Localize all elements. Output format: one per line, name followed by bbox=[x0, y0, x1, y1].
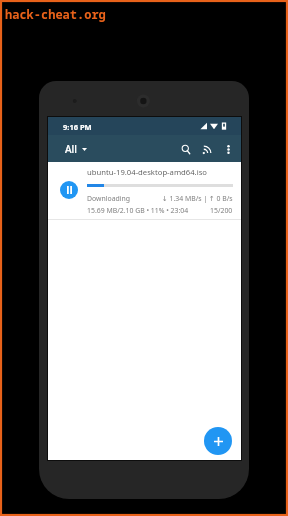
button[interactable]: RSS feed bbox=[195, 137, 219, 161]
staticText: All bbox=[65, 142, 77, 156]
staticText: Downloading bbox=[87, 194, 131, 203]
staticText: ubuntu-19.04-desktop-amd64.iso bbox=[87, 167, 207, 177]
staticText: 15/200 bbox=[210, 206, 233, 215]
button[interactable]: Pause bbox=[60, 181, 78, 199]
button[interactable]: All bbox=[60, 138, 92, 160]
staticText: 15.69 MB/2.10 GB • 11% • 23:04 bbox=[87, 206, 189, 215]
button[interactable]: Search bbox=[174, 137, 198, 161]
staticText: ↓ 1.34 MB/s | ↑ 0 B/s bbox=[162, 194, 233, 203]
button[interactable]: More options bbox=[216, 137, 240, 161]
button[interactable]: Add download bbox=[204, 427, 232, 455]
staticText: hack-cheat.org bbox=[5, 6, 106, 22]
button[interactable]: Pause bbox=[48, 162, 241, 220]
staticText: 9:16 PM bbox=[63, 122, 92, 132]
